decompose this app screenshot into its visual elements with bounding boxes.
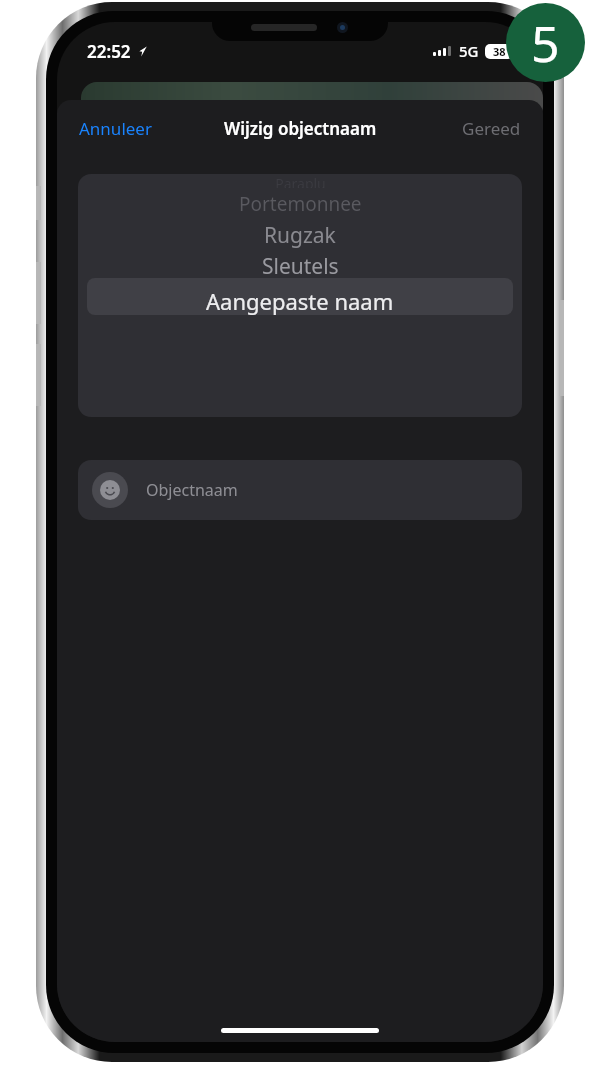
staticText: Rugzak (264, 221, 336, 250)
staticText: Portemonnee (239, 191, 362, 217)
staticText: Aangepaste naam (206, 286, 394, 316)
button[interactable]: Annuleer (57, 107, 174, 150)
button[interactable]: Kies emoji (78, 460, 522, 520)
button[interactable]: Rugzak (78, 220, 522, 251)
staticText: Objectnaam (146, 479, 238, 501)
staticText: Sleutels (262, 252, 339, 281)
button[interactable]: Portemonnee (78, 188, 522, 220)
button[interactable]: Gereed (440, 107, 543, 150)
staticText: 5G (459, 41, 479, 61)
staticText: Annuleer (79, 117, 152, 140)
button[interactable]: Aangepaste naam (78, 282, 522, 319)
staticText: Gereed (462, 117, 521, 140)
staticText: 22:52 (87, 40, 131, 63)
button[interactable]: Sleutels (78, 251, 522, 282)
staticText: Paraplu (275, 174, 326, 188)
staticText: 5 (531, 9, 560, 77)
staticText: Wijzig objectnaam (224, 117, 377, 140)
other: Kies emoji (92, 472, 128, 508)
staticText: 38 (493, 44, 506, 59)
